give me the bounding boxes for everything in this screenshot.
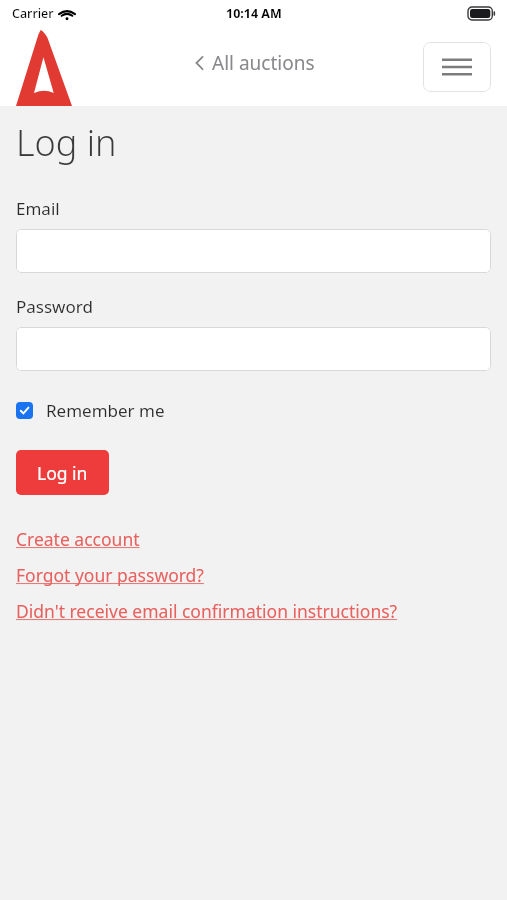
staticText: Didn't receive email confirmation instru… [16, 599, 398, 623]
button[interactable] [16, 229, 491, 273]
staticText: 10:14 AM [226, 5, 282, 22]
button[interactable]: Home [16, 30, 72, 106]
button[interactable]: Forgot your password? [16, 563, 204, 587]
button[interactable]: All auctions [194, 50, 315, 76]
button[interactable]: Remember me [16, 397, 165, 424]
staticText: Email [16, 197, 60, 220]
button[interactable]: Create account [16, 527, 140, 551]
staticText: Create account [16, 527, 140, 551]
staticText: Remember me [46, 399, 165, 422]
button[interactable] [16, 327, 491, 371]
staticText: Forgot your password? [16, 563, 204, 587]
staticText: Log in [16, 118, 117, 167]
staticText: All auctions [212, 50, 315, 76]
staticText: Password [16, 295, 93, 318]
button[interactable]: Menu [423, 42, 491, 92]
button[interactable]: Didn't receive email confirmation instru… [16, 599, 398, 623]
staticText: Carrier [12, 5, 54, 22]
staticText: Log in [37, 461, 88, 485]
button[interactable]: Log in [16, 450, 109, 495]
